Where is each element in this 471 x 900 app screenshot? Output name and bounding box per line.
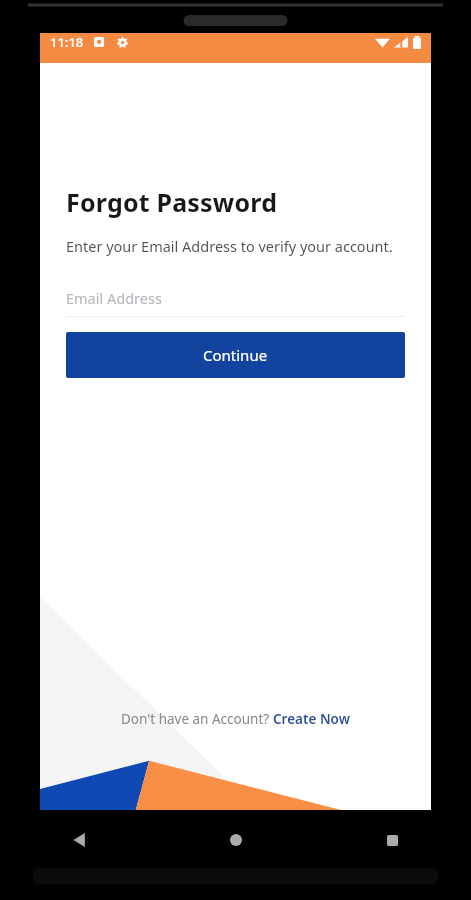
button[interactable]: Back — [0, 810, 157, 870]
button[interactable]: Continue — [66, 332, 405, 378]
button[interactable]: Home — [157, 810, 314, 870]
staticText: Create Now — [273, 710, 350, 728]
staticText: Email Address — [66, 288, 162, 308]
staticText: Forgot Password — [66, 185, 278, 219]
staticText: 11:18 — [50, 33, 84, 51]
staticText: Don't have an Account? — [121, 710, 273, 728]
staticText: Continue — [203, 345, 268, 365]
button[interactable]: Don't have an Account? — [66, 710, 405, 728]
button[interactable]: Email Address — [66, 288, 405, 317]
button[interactable]: Recent apps — [314, 810, 471, 870]
staticText: Enter your Email Address to verify your … — [66, 236, 393, 256]
